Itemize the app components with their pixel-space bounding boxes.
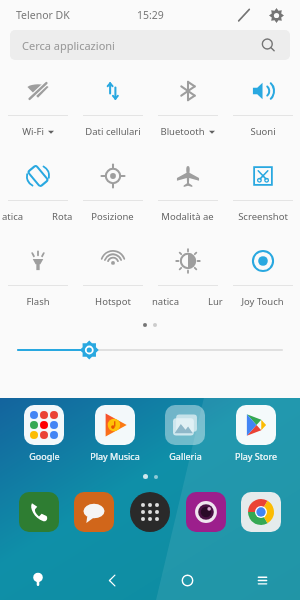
staticText: Flash	[26, 295, 50, 308]
button[interactable]: Play Musica	[82, 404, 148, 462]
button[interactable]: Chrome	[238, 489, 284, 535]
staticText: atica	[2, 210, 24, 223]
staticText: Bluetooth	[160, 125, 205, 138]
staticText: Screenshot	[238, 210, 288, 223]
button[interactable]: Home	[150, 560, 225, 600]
button[interactable]: Hotspot	[75, 236, 150, 321]
staticText: Rota	[52, 210, 73, 223]
button[interactable]: Camera	[183, 489, 229, 535]
button[interactable]: Recents	[225, 560, 300, 600]
button[interactable]: Cerca applicazioni	[10, 30, 290, 60]
staticText: Play Store	[235, 450, 277, 462]
staticText: Dati cellulari	[85, 125, 141, 138]
button[interactable]: Suoni	[225, 66, 300, 151]
button[interactable]: Modalità ae	[150, 151, 225, 236]
button[interactable]: atica	[0, 151, 75, 236]
button[interactable]: natica	[150, 236, 225, 321]
button[interactable]: Dati cellulari	[75, 66, 150, 151]
staticText: Posizione	[91, 210, 134, 223]
button[interactable]: Brightness	[0, 337, 300, 363]
staticText: Joy Touch	[241, 295, 284, 308]
button[interactable]: Bluetooth	[150, 66, 225, 151]
staticText: Modalità ae	[161, 210, 214, 223]
button[interactable]: Posizione	[75, 151, 150, 236]
staticText: Lur	[208, 295, 223, 308]
button[interactable]: Back	[75, 560, 150, 600]
button[interactable]: Google	[11, 404, 77, 462]
button[interactable]: Flash	[0, 236, 75, 321]
button[interactable]: Play Store	[223, 404, 289, 462]
button[interactable]: Galleria	[152, 404, 218, 462]
staticText: natica	[152, 295, 179, 308]
button[interactable]: Screenshot	[225, 151, 300, 236]
button[interactable]: Settings	[262, 1, 290, 29]
other: Search	[261, 38, 276, 53]
button[interactable]: Assistant	[0, 560, 75, 600]
button[interactable]: Messages	[71, 489, 117, 535]
staticText: Galleria	[169, 450, 202, 462]
button[interactable]: Wi-Fi	[0, 66, 75, 151]
staticText: Hotspot	[95, 295, 131, 308]
button[interactable]: All apps	[127, 489, 173, 535]
staticText: 15:29	[137, 8, 164, 22]
button[interactable]: Edit	[230, 1, 258, 29]
staticText: Play Musica	[90, 450, 140, 462]
staticText: Telenor DK	[16, 8, 70, 22]
button[interactable]: Phone	[16, 489, 62, 535]
staticText: Google	[29, 450, 60, 462]
staticText: Cerca applicazioni	[22, 38, 115, 53]
button[interactable]: Joy Touch	[225, 236, 300, 321]
staticText: Wi-Fi	[22, 125, 44, 138]
staticText: Suoni	[250, 125, 276, 138]
